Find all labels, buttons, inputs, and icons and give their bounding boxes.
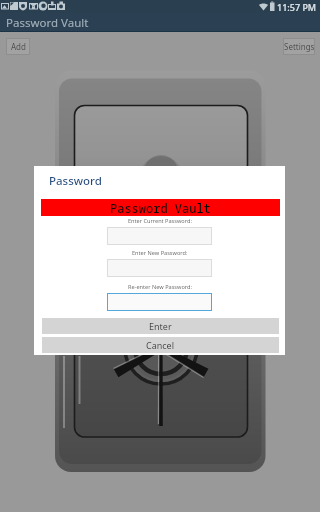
- staticText: Enter New Password:: [132, 249, 188, 257]
- button[interactable]: Add: [6, 38, 30, 55]
- button[interactable]: Settings: [283, 38, 315, 55]
- staticText: Enter: [149, 320, 172, 332]
- staticText: 11:57 PM: [277, 1, 317, 13]
- staticText: Settings: [284, 41, 315, 52]
- button[interactable]: Cancel: [42, 337, 279, 353]
- button[interactable]: Enter: [42, 318, 279, 334]
- staticText: Password Vault: [6, 15, 89, 31]
- staticText: Re-enter New Password:: [128, 283, 192, 291]
- staticText: Cancel: [146, 339, 175, 351]
- button[interactable]: [107, 227, 212, 245]
- button[interactable]: [107, 259, 212, 277]
- button[interactable]: [107, 293, 212, 311]
- staticText: Enter Current Password:: [128, 217, 192, 225]
- staticText: Password: [49, 173, 102, 189]
- staticText: Password Vault: [110, 200, 211, 216]
- staticText: Add: [11, 41, 26, 52]
